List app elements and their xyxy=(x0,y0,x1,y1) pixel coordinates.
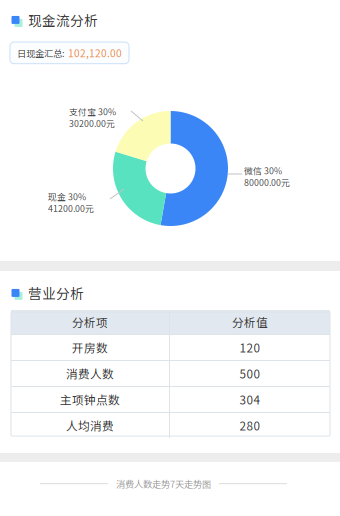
staticText: 人均消费 xyxy=(66,417,114,434)
staticText: 280 xyxy=(239,417,260,434)
staticText: 主项钟点数 xyxy=(60,391,120,408)
staticText: 80000.00元 xyxy=(244,176,290,188)
staticText: 微信 30% xyxy=(244,164,282,177)
staticText: 现金 30% xyxy=(48,190,86,203)
staticText: 开房数 xyxy=(72,339,108,356)
staticText: 现金流分析 xyxy=(28,10,98,30)
staticText: 120 xyxy=(239,339,260,356)
staticText: 41200.00元 xyxy=(48,202,94,214)
staticText: 分析值 xyxy=(232,313,268,330)
staticText: 消费人数走势7天走势图 xyxy=(116,477,211,490)
staticText: 500 xyxy=(239,365,260,382)
staticText: 营业分析 xyxy=(28,283,84,303)
staticText: 102,120.00 xyxy=(68,45,122,60)
staticText: 分析项 xyxy=(72,313,108,330)
staticText: 支付宝 30% xyxy=(69,105,116,118)
staticText: 30200.00元 xyxy=(69,117,115,129)
staticText: 304 xyxy=(239,391,260,408)
staticText: 消费人数 xyxy=(66,365,114,382)
staticText: 日现金汇总: xyxy=(17,46,65,60)
